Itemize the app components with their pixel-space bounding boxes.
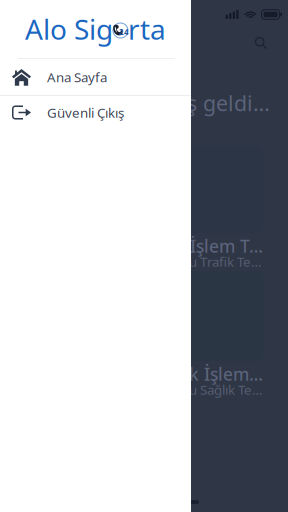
staticText: Sayın Üyemiz hoş geldiniz — [20, 89, 270, 117]
button[interactable]: Güvenli Çıkış — [0, 96, 191, 129]
staticText: 24 — [119, 27, 129, 37]
staticText: Zorunlu Trafik Teklifi — [148, 253, 264, 270]
button[interactable]: Sağlık İşlem Turu — [148, 271, 264, 396]
staticText: Araç İşlem Turu — [148, 234, 264, 257]
staticText: Ana Sayfa — [47, 68, 107, 86]
staticText: Alo Sig — [25, 10, 113, 48]
staticText: rta — [128, 10, 166, 48]
button[interactable]: Ana Sayfa — [0, 59, 191, 96]
staticText: Zorunlu Sağlık Teklifi — [148, 381, 264, 398]
button[interactable]: Araç İşlem Turu — [148, 145, 264, 268]
staticText: Güvenli Çıkış — [47, 104, 124, 121]
staticText: Sağlık İşlem Turu — [148, 362, 264, 385]
